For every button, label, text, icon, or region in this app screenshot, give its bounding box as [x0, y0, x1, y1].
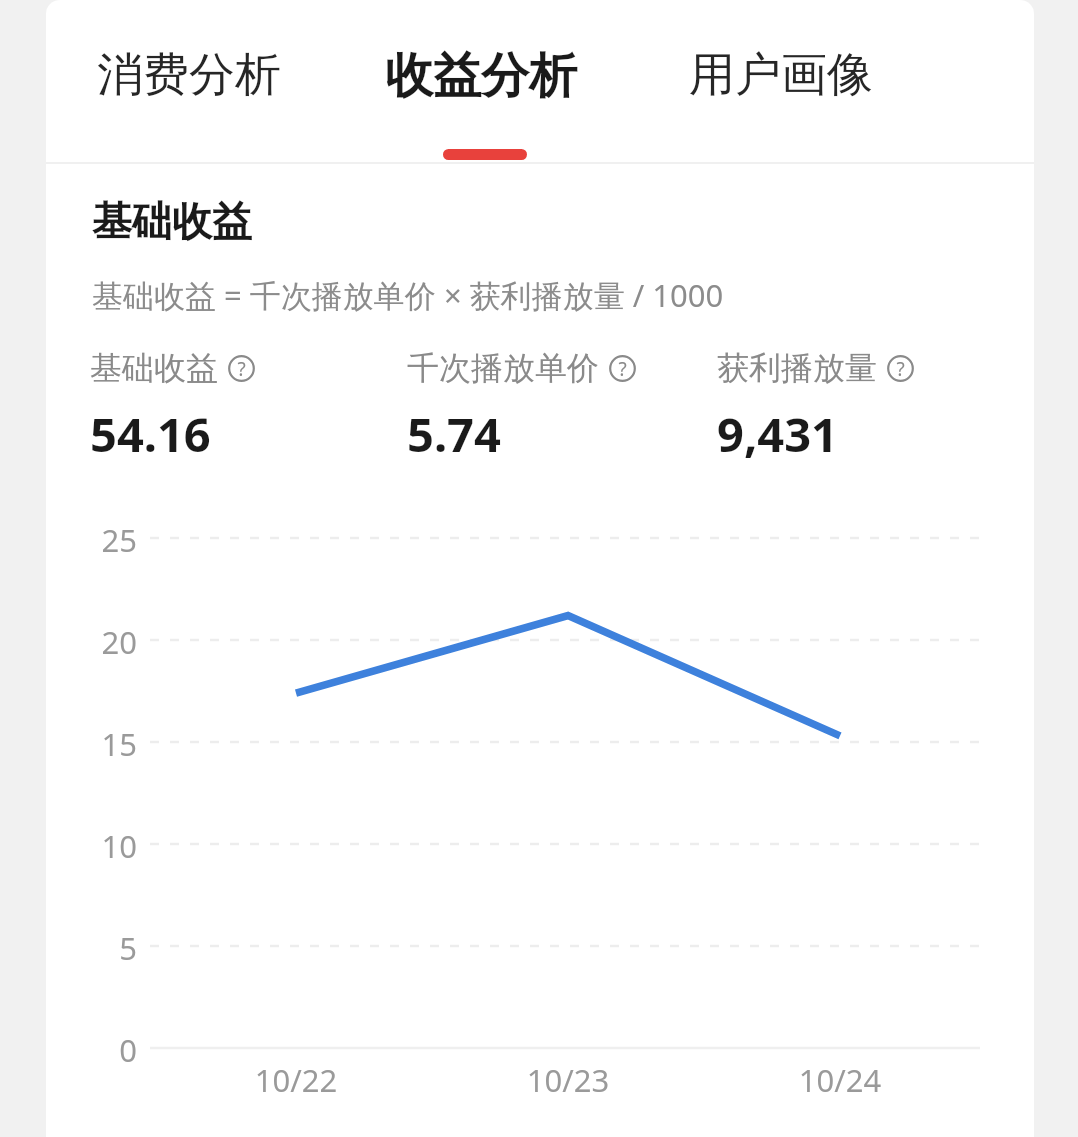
staticText: ? [896, 356, 905, 382]
staticText: 用户画像 [689, 46, 873, 104]
staticText: 20 [46, 621, 137, 663]
staticText: 基础收益 [92, 196, 252, 246]
staticText: 9,431 [717, 402, 838, 466]
button[interactable]: 千次播放单价 说明 [609, 355, 636, 382]
staticText: 0 [46, 1029, 137, 1071]
staticText: 10/22 [216, 1059, 376, 1101]
button[interactable]: 获利播放量 说明 [887, 355, 914, 382]
staticText: 10 [46, 825, 137, 867]
staticText: 消费分析 [97, 46, 281, 104]
staticText: 5 [46, 927, 137, 969]
staticText: 收益分析 [385, 46, 577, 106]
staticText: 15 [46, 723, 137, 765]
staticText: 千次播放单价 [407, 348, 599, 388]
staticText: 10/24 [760, 1059, 920, 1101]
staticText: ? [237, 356, 246, 382]
staticText: 基础收益 = 千次播放单价 × 获利播放量 / 1000 [92, 274, 724, 316]
staticText: 基础收益 [90, 348, 218, 388]
button[interactable]: 消费分析 [46, 0, 331, 162]
staticText: 10/23 [488, 1059, 648, 1101]
staticText: 5.74 [407, 402, 501, 466]
staticText: 25 [46, 519, 137, 561]
button[interactable]: 收益分析 [331, 0, 631, 162]
staticText: 54.16 [90, 402, 211, 466]
button[interactable]: 基础收益 说明 [228, 355, 255, 382]
button[interactable]: 用户画像 [631, 0, 931, 162]
staticText: ? [618, 356, 627, 382]
staticText: 获利播放量 [717, 348, 877, 388]
